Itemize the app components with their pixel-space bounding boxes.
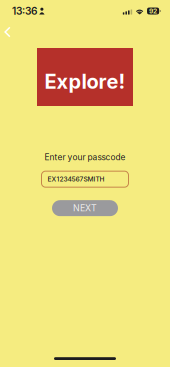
staticText: 13:36	[12, 5, 37, 17]
staticText: 92	[149, 7, 157, 15]
button[interactable]: Back	[0, 23, 24, 46]
staticText: EX1234567SMITH	[47, 175, 104, 183]
button[interactable]: NEXT	[52, 200, 118, 216]
staticText: Enter your passcode	[44, 152, 125, 162]
staticText: Explore!	[44, 69, 125, 94]
button[interactable]: EX1234567SMITH	[41, 171, 128, 187]
staticText: NEXT	[73, 203, 97, 213]
